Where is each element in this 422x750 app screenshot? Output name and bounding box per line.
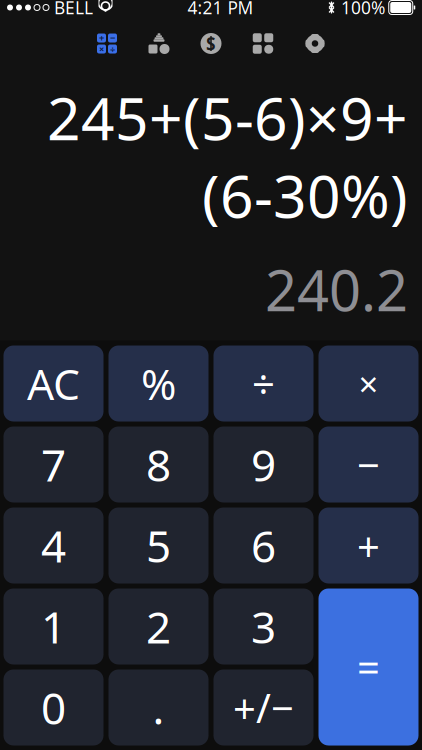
button[interactable]: 7 [3, 426, 103, 502]
button[interactable]: Currency [185, 21, 237, 65]
button[interactable]: + [318, 507, 418, 583]
staticText: 0 [41, 678, 66, 737]
button[interactable]: 6 [213, 507, 313, 583]
staticText: × [99, 43, 104, 55]
button[interactable]: − [318, 426, 418, 502]
staticText: ÷ [252, 357, 275, 410]
button[interactable]: % [108, 345, 208, 421]
staticText: 1 [41, 597, 66, 656]
staticText: % [141, 355, 176, 412]
staticText: AC [27, 355, 80, 412]
staticText: S [206, 32, 216, 55]
button[interactable]: Converter [237, 21, 289, 65]
button[interactable]: = [318, 588, 418, 745]
button[interactable]: Settings [289, 21, 341, 65]
button[interactable]: 8 [108, 426, 208, 502]
button[interactable]: 9 [213, 426, 313, 502]
button[interactable]: 1 [3, 588, 103, 664]
staticText: 4 [41, 516, 66, 575]
button[interactable]: Geometry [133, 21, 185, 65]
staticText: 9 [251, 435, 276, 494]
staticText: +/− [233, 681, 294, 734]
staticText: + [99, 32, 104, 44]
button[interactable]: 0 [3, 669, 103, 745]
staticText: . [152, 678, 164, 737]
staticText: 100% [341, 0, 385, 19]
staticText: 8 [146, 435, 171, 494]
staticText: − [110, 32, 115, 44]
button[interactable]: . [108, 669, 208, 745]
staticText: = [357, 640, 380, 693]
staticText: 3 [251, 597, 276, 656]
staticText: 2 [146, 597, 171, 656]
staticText: 4:21 PM [187, 0, 253, 19]
button[interactable]: +/− [213, 669, 313, 745]
button[interactable]: 2 [108, 588, 208, 664]
staticText: 6 [251, 516, 276, 575]
button[interactable]: AC [3, 345, 103, 421]
button[interactable]: × [318, 345, 418, 421]
staticText: × [358, 360, 378, 406]
staticText: 240.2 [265, 252, 408, 327]
button[interactable]: ÷ [213, 345, 313, 421]
staticText: − [357, 438, 380, 491]
staticText: (6-30%) [202, 156, 408, 234]
staticText: ÷ [110, 43, 115, 55]
button[interactable]: 3 [213, 588, 313, 664]
staticText: 7 [41, 435, 66, 494]
staticText: BELL [54, 0, 93, 19]
staticText: + [357, 519, 380, 572]
staticText: 245+(5-6)×9+ [47, 78, 408, 156]
button[interactable]: 4 [3, 507, 103, 583]
button[interactable]: Calculator [81, 21, 133, 65]
button[interactable]: 5 [108, 507, 208, 583]
staticText: 5 [146, 516, 171, 575]
